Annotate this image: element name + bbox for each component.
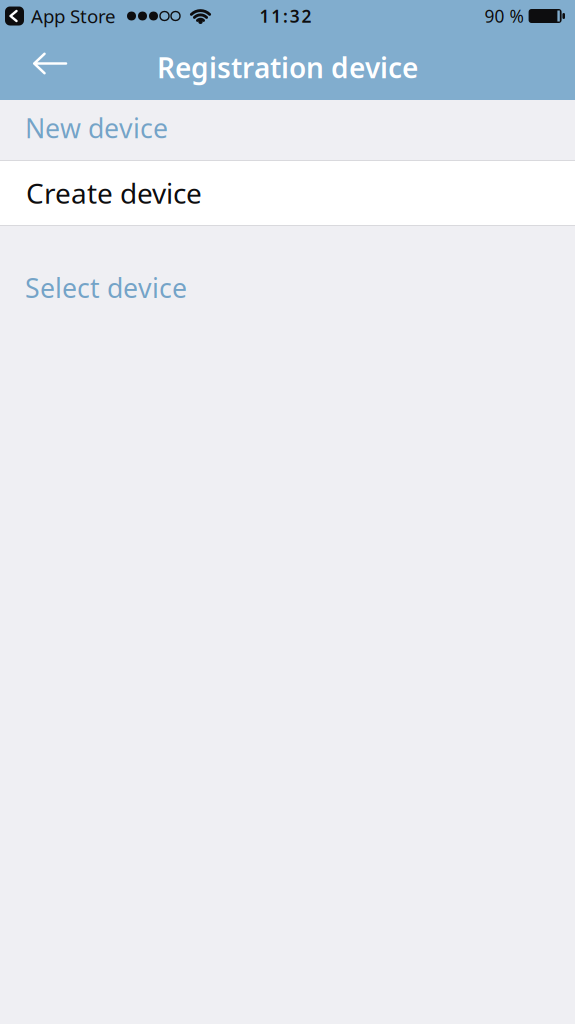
button[interactable]: Back: [0, 39, 66, 96]
staticText: App Store: [31, 4, 116, 28]
staticText: 11:32: [259, 4, 312, 27]
staticText: 90 %: [485, 4, 524, 27]
staticText: New device: [25, 110, 168, 146]
staticText: Registration device: [157, 49, 418, 86]
staticText: Select device: [25, 270, 187, 305]
button[interactable]: Create device: [0, 160, 575, 226]
button[interactable]: Back to App Store: [5, 4, 116, 28]
staticText: Create device: [26, 174, 202, 212]
